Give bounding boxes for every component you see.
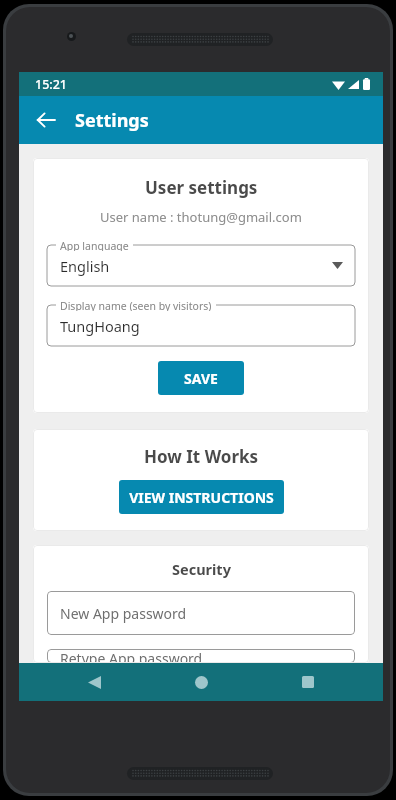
staticText: TungHoang [60, 316, 140, 336]
staticText: SAVE [184, 369, 218, 388]
button[interactable]: New App password [47, 591, 355, 635]
button[interactable]: Home [169, 663, 233, 701]
staticText: Settings [75, 108, 149, 133]
button[interactable]: App language [47, 239, 355, 286]
staticText: New App password [60, 604, 187, 623]
button[interactable]: Retype App password [47, 649, 355, 663]
button[interactable]: SAVE [158, 361, 244, 395]
button[interactable]: Back [25, 99, 67, 141]
button[interactable]: Recents [276, 663, 340, 701]
staticText: User name : thotung@gmail.com [100, 208, 302, 226]
staticText: VIEW INSTRUCTIONS [129, 488, 274, 507]
button[interactable]: Back [62, 663, 126, 701]
staticText: 15:21 [35, 76, 68, 93]
button[interactable]: VIEW INSTRUCTIONS [119, 480, 284, 514]
staticText: Retype App password [60, 649, 203, 663]
staticText: English [60, 256, 110, 276]
staticText: Display name (seen by visitors) [60, 299, 212, 311]
staticText: App language [60, 239, 129, 251]
staticText: How It Works [144, 445, 259, 468]
button[interactable]: Display name (seen by visitors) [47, 299, 355, 346]
staticText: Security [172, 559, 231, 579]
staticText: User settings [145, 176, 258, 199]
